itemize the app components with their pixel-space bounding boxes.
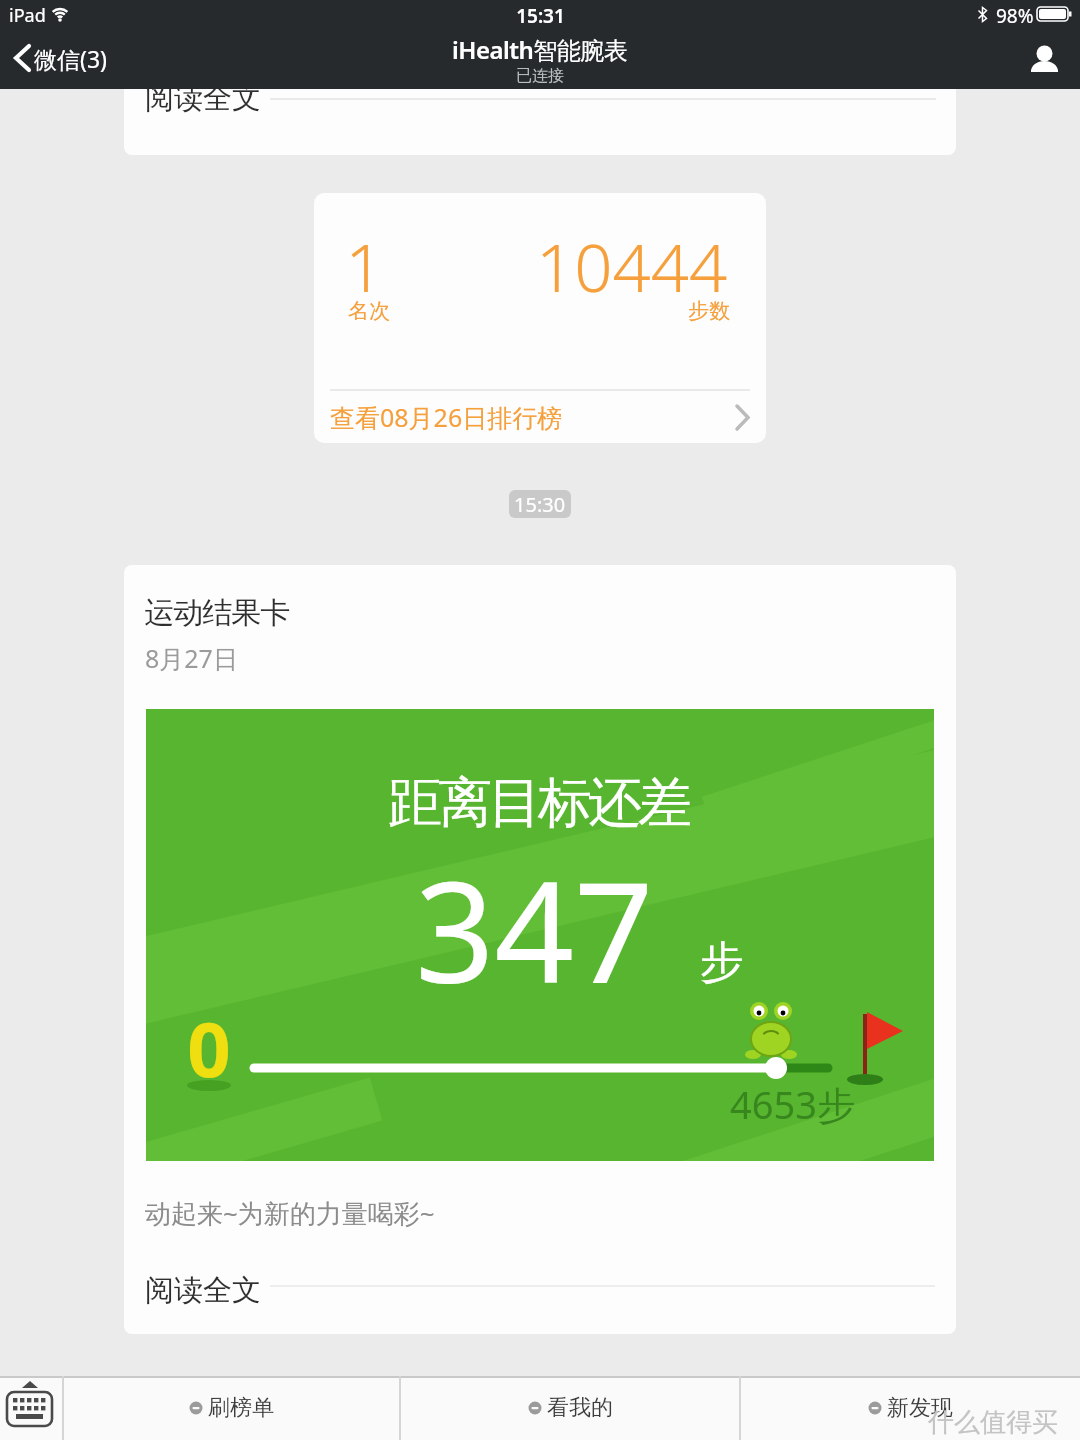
staticText: 阅读全文 [145, 1272, 261, 1309]
button[interactable]: 微信(3) [12, 28, 172, 89]
staticText: 看我的 [547, 1394, 613, 1422]
staticText: 名次 [348, 298, 390, 324]
button[interactable]: 看我的 [401, 1376, 739, 1440]
staticText: 15:31 [516, 3, 565, 29]
staticText: 什么值得买 [928, 1406, 1058, 1439]
button[interactable]: 新发现 [741, 1376, 1080, 1440]
staticText: 刷榜单 [208, 1394, 274, 1422]
button[interactable]: 阅读全文 [124, 89, 956, 155]
staticText: 微信(3) [34, 43, 107, 74]
staticText: iPad [9, 3, 46, 28]
staticText: 动起来~为新的力量喝彩~ [145, 1195, 435, 1231]
staticText: 10444 [536, 220, 728, 311]
button[interactable] [4, 1380, 60, 1438]
staticText: 步数 [688, 298, 730, 324]
staticText: 运动结果卡 [145, 594, 290, 632]
staticText: 1 [345, 220, 384, 311]
button[interactable]: 查看08月26日排行榜 [314, 391, 766, 443]
staticText: 0 [187, 996, 231, 1100]
staticText: 已连接 [516, 66, 564, 86]
staticText: 4653步 [730, 1078, 855, 1130]
staticText: 8月27日 [145, 641, 238, 675]
button[interactable] [1022, 38, 1066, 80]
staticText: 347 [415, 834, 654, 1023]
staticText: iHealth智能腕表 [452, 33, 628, 66]
staticText: 98% [996, 3, 1034, 29]
button[interactable]: 阅读全文 [124, 1257, 956, 1334]
staticText: 查看08月26日排行榜 [330, 400, 563, 434]
staticText: 15:30 [514, 491, 566, 518]
staticText: 步 [700, 935, 744, 990]
staticText: 阅读全文 [145, 89, 261, 117]
button[interactable]: 刷榜单 [64, 1376, 399, 1440]
staticText: 新发现 [887, 1394, 953, 1422]
staticText: 距离目标还差 [390, 769, 690, 837]
